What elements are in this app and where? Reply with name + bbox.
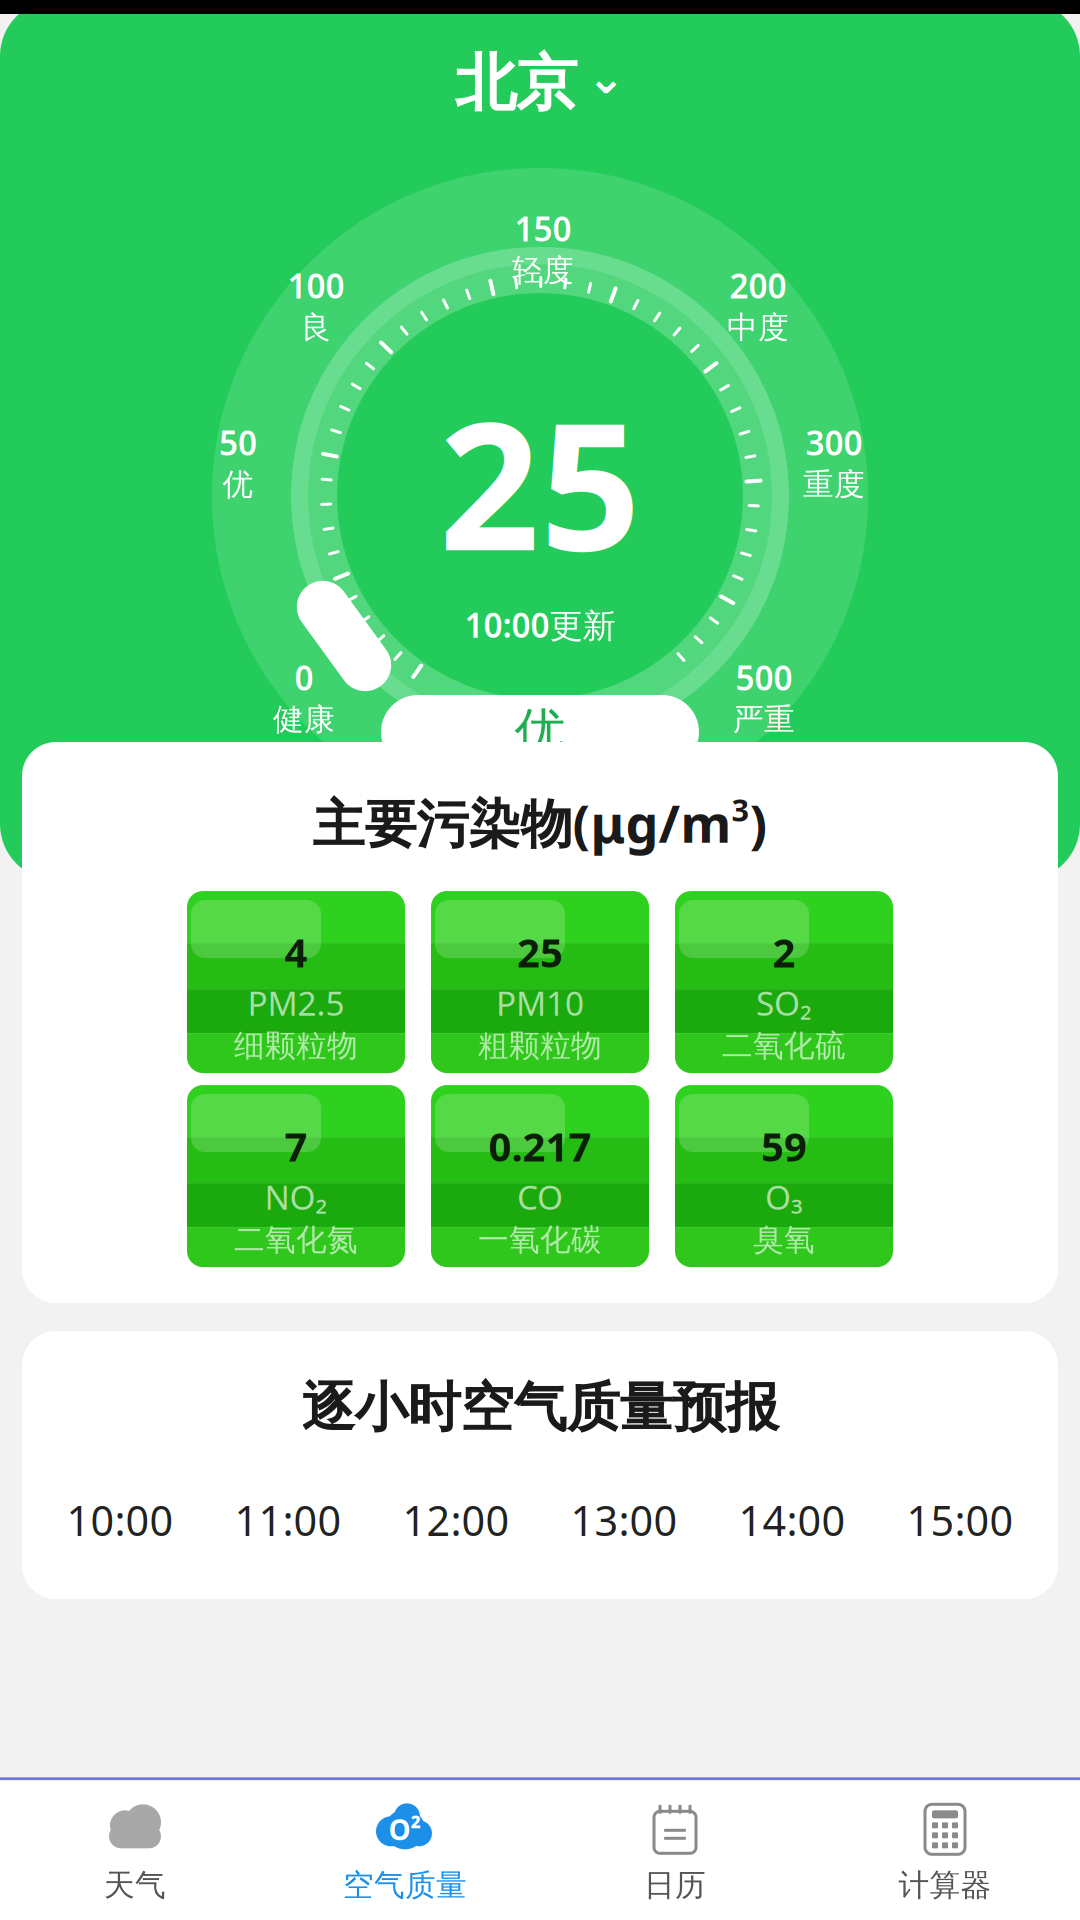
staticText: 优 [514, 701, 565, 763]
staticText: 北京 [455, 46, 577, 121]
staticText: 10:00更新 [464, 603, 615, 647]
staticText: 300 [805, 420, 862, 465]
staticText: 健康 [273, 701, 335, 738]
staticText: 0 [294, 655, 313, 700]
staticText: 二氧化氮 [234, 1221, 358, 1259]
staticText: 中度 [727, 309, 789, 346]
staticText: 优 [222, 466, 253, 503]
staticText: PM10 [496, 981, 584, 1025]
button[interactable]: 计算器 [810, 1794, 1080, 1910]
button[interactable]: 2 [670, 891, 898, 1073]
staticText: 臭氧 [753, 1221, 815, 1259]
staticText: 10:00 [66, 1493, 173, 1547]
staticText: 细颗粒物 [234, 1027, 358, 1065]
staticText: 计算器 [898, 1866, 991, 1904]
staticText: CO [517, 1175, 563, 1219]
staticText: 12:00 [402, 1493, 509, 1547]
staticText: 重度 [803, 466, 865, 503]
staticText: 14:00 [738, 1493, 845, 1547]
staticText: 7 [284, 1119, 307, 1173]
staticText: 逐小时空气质量预报 [301, 1375, 778, 1441]
staticText: 粗颗粒物 [478, 1027, 602, 1065]
staticText: O₃ [765, 1175, 803, 1219]
staticText: 59 [761, 1119, 807, 1173]
staticText: 50 [219, 420, 257, 465]
staticText: 11:00 [234, 1493, 341, 1547]
staticText: 良 [300, 309, 331, 346]
button[interactable]: 日历 [540, 1794, 810, 1910]
staticText: 4 [284, 925, 307, 979]
staticText: 3 [731, 789, 749, 830]
staticText: 15:00 [906, 1493, 1013, 1547]
staticText: 25 [439, 365, 641, 599]
button[interactable]: 北京 [447, 46, 633, 121]
staticText: 日历 [644, 1866, 706, 1904]
staticText: 二氧化硫 [722, 1027, 846, 1065]
staticText: 主要污染物(μg/m [312, 788, 731, 857]
staticText: 200 [729, 263, 786, 308]
staticText: ⌄ [587, 52, 625, 103]
button[interactable]: 59 [670, 1085, 898, 1267]
staticText: 轻度 [512, 252, 574, 289]
button[interactable]: O² [270, 1794, 540, 1910]
button[interactable]: 7 [182, 1085, 410, 1267]
staticText: 25 [517, 925, 563, 979]
staticText: 天气 [104, 1866, 166, 1904]
staticText: SO₂ [756, 981, 812, 1025]
button[interactable]: 天气 [0, 1794, 270, 1910]
button[interactable]: 25 [426, 891, 654, 1073]
staticText: 0.217 [488, 1119, 591, 1173]
staticText: 2 [772, 925, 795, 979]
button[interactable]: 优 [381, 695, 699, 769]
staticText: 13:00 [570, 1493, 677, 1547]
staticText: 500 [735, 655, 792, 700]
button[interactable]: 4 [182, 891, 410, 1073]
staticText: PM2.5 [247, 981, 344, 1025]
staticText: 150 [514, 206, 571, 251]
staticText: 一氧化碳 [478, 1221, 602, 1259]
staticText: 严重 [733, 701, 795, 738]
staticText: 100 [287, 263, 344, 308]
staticText: O² [388, 1811, 421, 1848]
staticText: ) [749, 788, 767, 857]
staticText: 空气质量 [343, 1866, 467, 1904]
button[interactable]: 0.217 [426, 1085, 654, 1267]
staticText: NO₂ [264, 1175, 327, 1219]
